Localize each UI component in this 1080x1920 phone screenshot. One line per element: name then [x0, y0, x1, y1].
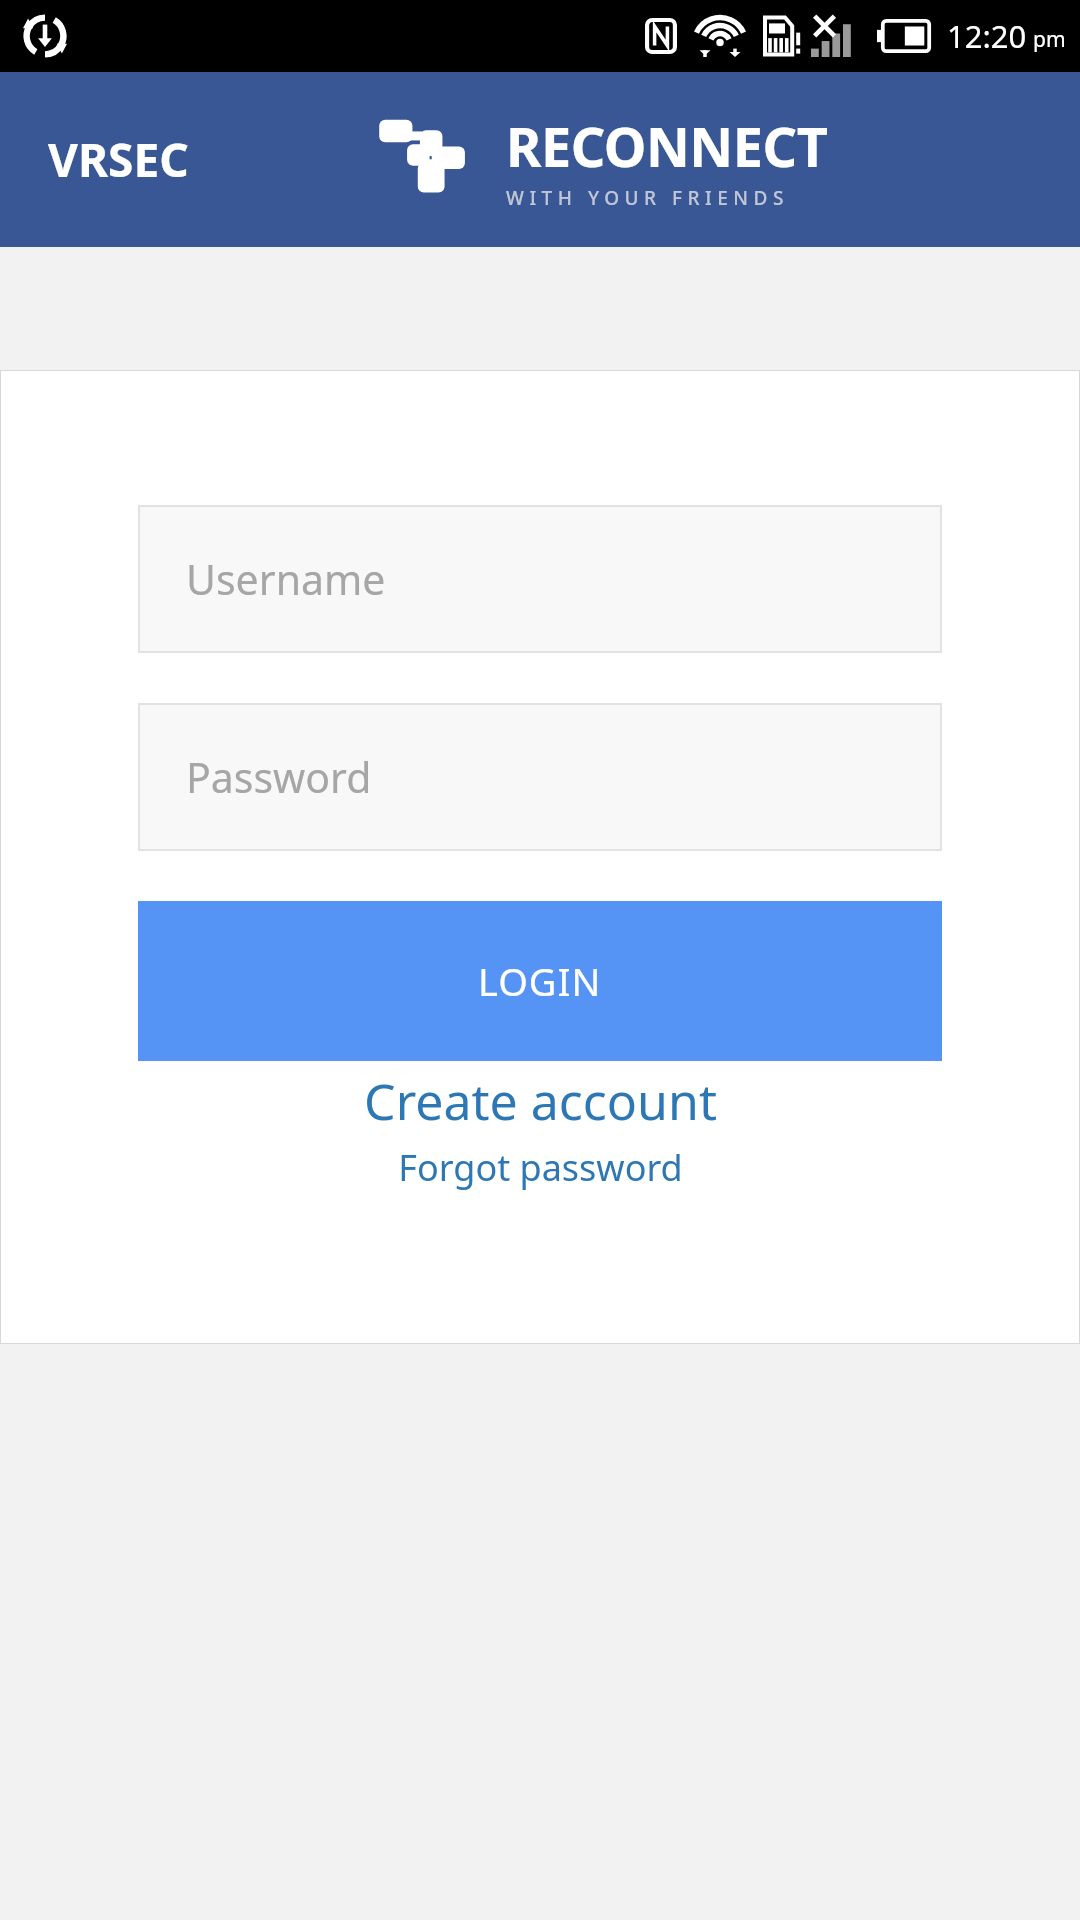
staticText: Forgot password	[398, 1143, 683, 1192]
staticText: pm	[1033, 25, 1066, 54]
staticText: WITH YOUR FRIENDS	[506, 185, 789, 211]
button[interactable]: LOGIN	[138, 901, 942, 1061]
staticText: LOGIN	[478, 955, 602, 1007]
staticText: 12:20	[947, 15, 1027, 57]
button[interactable]: Username	[138, 505, 942, 653]
staticText: Username	[186, 551, 386, 607]
staticText: RECONNECT	[506, 109, 828, 183]
staticText: Create account	[364, 1067, 717, 1135]
staticText: VRSEC	[48, 128, 189, 191]
button[interactable]: Create account	[138, 1067, 942, 1135]
button[interactable]: Password	[138, 703, 942, 851]
button[interactable]: Forgot password	[138, 1143, 942, 1192]
staticText: Password	[186, 749, 372, 805]
